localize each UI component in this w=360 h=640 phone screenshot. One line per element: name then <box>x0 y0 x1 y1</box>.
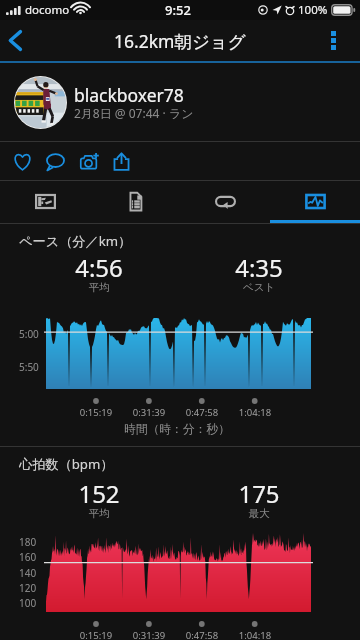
staticText: ベスト <box>199 281 319 294</box>
staticText: 1:04:18 <box>229 629 281 640</box>
staticText: 100 <box>19 596 37 610</box>
staticText: 0:31:39 <box>123 406 175 419</box>
button[interactable]: Details <box>90 181 180 223</box>
staticText: 0:15:19 <box>70 406 122 419</box>
staticText: 0:31:39 <box>123 629 175 640</box>
button[interactable]: Add photo <box>73 143 106 180</box>
button[interactable]: More options <box>320 20 360 61</box>
staticText: 2月8日 @ 07:44 · ラン <box>74 105 194 121</box>
button[interactable]: Share <box>105 143 138 180</box>
button[interactable]: Laps <box>180 181 270 223</box>
staticText: 4:56 <box>39 251 159 284</box>
staticText: ペース（分／km） <box>19 232 132 250</box>
staticText: docomo <box>25 2 70 18</box>
staticText: 4:35 <box>199 251 319 284</box>
button[interactable]: blackboxer78 <box>0 63 360 141</box>
staticText: blackboxer78 <box>74 83 184 107</box>
staticText: 160 <box>19 550 37 564</box>
staticText: 0:47:58 <box>176 406 228 419</box>
staticText: 時間（時：分：秒） <box>67 422 287 437</box>
staticText: 5:50 <box>19 360 39 374</box>
staticText: 152 <box>39 477 159 510</box>
staticText: 0:47:58 <box>176 629 228 640</box>
staticText: 最大 <box>199 507 319 520</box>
button[interactable]: Charts <box>270 181 360 223</box>
staticText: 5:00 <box>19 327 39 341</box>
staticText: 平均 <box>39 281 159 294</box>
staticText: 心拍数（bpm） <box>19 455 114 473</box>
staticText: 1:04:18 <box>229 406 281 419</box>
staticText: 180 <box>19 535 37 549</box>
staticText: 平均 <box>39 507 159 520</box>
button[interactable]: Map <box>0 181 90 223</box>
staticText: 9:52 <box>165 1 191 19</box>
staticText: 120 <box>19 581 37 595</box>
staticText: 16.2km朝ジョグ <box>114 29 246 53</box>
staticText: 0:15:19 <box>70 629 122 640</box>
staticText: 175 <box>199 477 319 510</box>
staticText: 100% <box>298 2 328 18</box>
button[interactable]: Comment <box>39 143 72 180</box>
button[interactable]: Back <box>0 20 44 61</box>
staticText: 140 <box>19 566 37 580</box>
button[interactable]: Like <box>6 143 39 180</box>
